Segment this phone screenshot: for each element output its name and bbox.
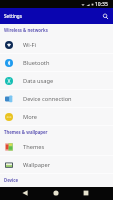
staticText: Themes & wallpaper: [4, 129, 48, 135]
button[interactable]: Themes: [0, 138, 113, 156]
staticText: Device: [4, 177, 19, 183]
staticText: Wireless & networks: [4, 27, 48, 33]
staticText: Bluetooth: [23, 59, 50, 67]
button[interactable]: Data usage: [0, 72, 113, 90]
staticText: Wi-Fi: [23, 41, 37, 49]
button[interactable]: Search: [97, 8, 113, 24]
button[interactable]: More: [0, 108, 113, 126]
button[interactable]: Recents: [79, 186, 93, 199]
button[interactable]: Wallpaper: [0, 156, 113, 174]
staticText: Wallpaper: [23, 161, 51, 169]
staticText: Settings: [4, 13, 22, 19]
button[interactable]: Device connection: [0, 90, 113, 108]
staticText: More: [23, 113, 38, 121]
staticText: Device connection: [23, 95, 72, 103]
button[interactable]: Home: [49, 186, 63, 199]
button[interactable]: Bluetooth: [0, 54, 113, 72]
button[interactable]: Back: [18, 186, 32, 199]
button[interactable]: Wi-Fi: [0, 36, 113, 54]
staticText: Themes: [23, 143, 45, 151]
staticText: 10:35: [95, 1, 108, 8]
staticText: Data usage: [23, 77, 54, 85]
